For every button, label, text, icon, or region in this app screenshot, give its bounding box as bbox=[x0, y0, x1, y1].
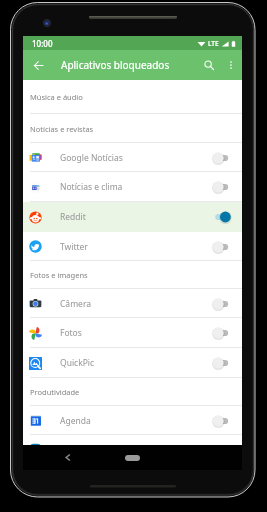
button[interactable]: Home bbox=[125, 455, 140, 461]
button[interactable]: Google Notícias bbox=[23, 143, 242, 172]
button[interactable]: Back bbox=[61, 451, 74, 464]
button[interactable]: Twitter bbox=[23, 232, 242, 261]
staticText: Reddit bbox=[60, 211, 86, 223]
staticText: Fotos e imagens bbox=[30, 270, 88, 280]
staticText: Câmera bbox=[60, 298, 91, 310]
staticText: Notícias e revistas bbox=[30, 124, 94, 134]
staticText: Música e áudio bbox=[30, 92, 83, 102]
button[interactable]: Notícias e clima bbox=[23, 172, 242, 202]
button[interactable]: Câmera bbox=[23, 289, 242, 318]
staticText: Notícias e clima bbox=[60, 181, 123, 193]
staticText: Twitter bbox=[60, 241, 88, 253]
button[interactable]: Reddit bbox=[23, 202, 242, 232]
staticText: 10:00 bbox=[32, 38, 53, 49]
staticText: Agenda bbox=[60, 415, 91, 427]
staticText: Produtividade bbox=[30, 387, 80, 397]
staticText: Aplicativos bloqueados bbox=[61, 58, 170, 72]
staticText: Fotos bbox=[60, 327, 82, 339]
button[interactable]: QuickPic bbox=[23, 348, 242, 378]
button[interactable]: More options bbox=[220, 54, 242, 76]
button[interactable]: Agenda bbox=[23, 406, 242, 435]
button[interactable]: Fotos bbox=[23, 318, 242, 348]
staticText: Google Notícias bbox=[60, 152, 123, 164]
staticText: LTE bbox=[208, 39, 219, 48]
button[interactable]: Back bbox=[23, 50, 53, 80]
staticText: QuickPic bbox=[60, 357, 95, 369]
button[interactable]: Search bbox=[198, 54, 220, 76]
